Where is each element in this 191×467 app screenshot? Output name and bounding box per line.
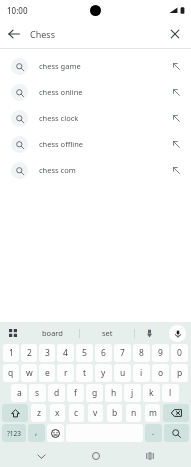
staticText: 7 — [120, 347, 125, 359]
button[interactable]: chess com — [0, 157, 191, 183]
button[interactable]: c — [69, 404, 84, 422]
button[interactable]: h — [105, 384, 122, 402]
staticText: chess online — [39, 87, 167, 97]
staticText: i — [140, 367, 143, 379]
button[interactable]: chess game — [0, 53, 191, 79]
button[interactable]: 5 — [76, 344, 93, 362]
staticText: p — [177, 367, 183, 379]
staticText: d — [54, 387, 60, 399]
staticText: k — [149, 387, 154, 399]
button[interactable]: i — [133, 364, 150, 382]
button[interactable]: 3 — [39, 344, 55, 362]
staticText: ?123 — [7, 429, 21, 438]
button[interactable]: 9 — [152, 344, 169, 362]
button[interactable]: chess offline — [0, 131, 191, 157]
button[interactable]: chess clock — [0, 105, 191, 131]
staticText: q — [8, 367, 14, 379]
staticText: z — [37, 407, 41, 419]
button[interactable]: r — [57, 364, 74, 382]
button[interactable]: Comma — [28, 424, 45, 442]
staticText: 5 — [82, 347, 87, 359]
button[interactable]: Keyboard options — [0, 322, 26, 344]
button[interactable]: x — [50, 404, 65, 422]
button[interactable]: p — [171, 364, 188, 382]
staticText: 3 — [45, 347, 50, 359]
staticText: y — [101, 367, 106, 379]
staticText: v — [93, 407, 98, 419]
button[interactable]: k — [143, 384, 160, 402]
staticText: u — [120, 367, 126, 379]
staticText: b — [112, 407, 118, 419]
button[interactable]: n — [126, 404, 141, 422]
button[interactable]: 7 — [114, 344, 131, 362]
button[interactable]: e — [39, 364, 55, 382]
button[interactable]: y — [95, 364, 112, 382]
button[interactable]: Emoji — [47, 424, 64, 442]
button[interactable]: 6 — [95, 344, 112, 362]
staticText: 9 — [158, 347, 163, 359]
button[interactable]: g — [86, 384, 103, 402]
staticText: h — [111, 387, 117, 399]
staticText: 10:00 — [7, 5, 28, 16]
button[interactable]: v — [88, 404, 103, 422]
button[interactable]: w — [21, 364, 37, 382]
staticText: chess clock — [39, 113, 167, 123]
button[interactable]: chess online — [0, 79, 191, 105]
staticText: j — [131, 387, 134, 399]
button[interactable]: l — [162, 384, 179, 402]
button[interactable]: j — [124, 384, 141, 402]
button[interactable]: Back — [0, 20, 28, 48]
button[interactable]: Recent apps — [137, 445, 163, 467]
staticText: o — [158, 367, 164, 379]
button[interactable]: u — [114, 364, 131, 382]
staticText: n — [131, 407, 137, 419]
button[interactable]: s — [29, 384, 46, 402]
staticText: a — [17, 387, 22, 399]
button[interactable]: Period — [145, 424, 162, 442]
button[interactable]: o — [152, 364, 169, 382]
button[interactable]: q — [3, 364, 19, 382]
button[interactable]: t — [76, 364, 93, 382]
staticText: x — [55, 407, 60, 419]
staticText: set — [102, 328, 113, 338]
staticText: s — [35, 387, 40, 399]
staticText: , — [35, 426, 38, 437]
staticText: 8 — [139, 347, 144, 359]
button[interactable]: m — [145, 404, 160, 422]
button[interactable]: 8 — [133, 344, 150, 362]
staticText: w — [26, 367, 33, 379]
button[interactable]: 4 — [57, 344, 74, 362]
staticText: board — [42, 328, 63, 338]
button[interactable]: set — [80, 322, 134, 344]
button[interactable]: Clipboard — [135, 322, 163, 344]
staticText: chess game — [39, 61, 167, 71]
button[interactable]: 2 — [21, 344, 37, 362]
button[interactable]: d — [48, 384, 65, 402]
button[interactable]: 1 — [3, 344, 19, 362]
staticText: 2 — [27, 347, 32, 359]
staticText: g — [92, 387, 98, 399]
staticText: t — [83, 367, 87, 379]
button[interactable]: Search — [164, 424, 189, 442]
staticText: 1 — [9, 347, 14, 359]
button[interactable]: Voice input — [163, 322, 191, 344]
button[interactable]: Hide keyboard — [28, 445, 54, 467]
staticText: 4 — [63, 347, 68, 359]
button[interactable]: a — [11, 384, 27, 402]
button[interactable]: Shift — [2, 404, 28, 422]
staticText: c — [74, 407, 79, 419]
button[interactable]: f — [67, 384, 84, 402]
staticText: Chess — [30, 28, 161, 40]
button[interactable]: ?123 — [2, 424, 26, 442]
button[interactable]: board — [26, 322, 79, 344]
button[interactable]: b — [107, 404, 122, 422]
button[interactable]: Backspace — [163, 404, 189, 422]
button[interactable]: Home — [83, 445, 109, 467]
staticText: 0 — [177, 347, 182, 359]
staticText: m — [149, 407, 157, 419]
button[interactable]: Clear — [161, 20, 189, 48]
staticText: f — [74, 387, 77, 399]
button[interactable]: z — [31, 404, 46, 422]
button[interactable]: 0 — [171, 344, 188, 362]
